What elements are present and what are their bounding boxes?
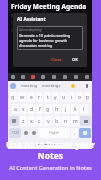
button[interactable]: j	[62, 104, 70, 114]
staticText: y	[54, 94, 57, 101]
staticText: j	[65, 106, 67, 113]
staticText: i	[71, 94, 73, 101]
button[interactable]: Clipboard	[18, 73, 28, 81]
button[interactable]: o	[76, 92, 83, 102]
staticText: f	[39, 106, 41, 113]
button[interactable]: g	[44, 104, 52, 114]
button[interactable]: Shift	[9, 116, 19, 126]
staticText: d	[30, 106, 34, 113]
button[interactable]: t	[44, 92, 51, 102]
staticText: w	[20, 94, 24, 101]
button[interactable]: s	[20, 104, 27, 114]
staticText: g	[46, 106, 50, 113]
staticText: s	[22, 106, 25, 113]
staticText: ?123	[12, 131, 19, 135]
staticText: x	[30, 118, 33, 125]
staticText: p	[86, 94, 90, 101]
staticText: m	[73, 118, 78, 125]
button[interactable]: y	[52, 92, 59, 102]
button[interactable]: Enter	[79, 128, 91, 138]
button[interactable]: z	[20, 116, 27, 126]
button[interactable]: u	[60, 92, 67, 102]
staticText: INTRODUCTION	[11, 14, 33, 18]
button[interactable]: p	[84, 92, 91, 102]
button[interactable]: OK	[69, 56, 81, 63]
staticText: gr	[11, 27, 15, 32]
button[interactable]: Emoji	[22, 128, 29, 138]
staticText: r	[38, 94, 41, 101]
staticText: English	[49, 131, 60, 135]
button[interactable]: Backspace	[80, 116, 91, 126]
staticText: .	[74, 130, 76, 137]
staticText: l	[83, 106, 85, 113]
staticText: e	[30, 94, 33, 101]
staticText: AI Content Generation in Notes	[9, 164, 92, 171]
staticText: Close	[51, 57, 62, 62]
button[interactable]: Record	[28, 73, 38, 81]
button[interactable]: Mic	[84, 81, 90, 91]
button[interactable]: Assistant	[10, 83, 16, 89]
button[interactable]: Close	[48, 56, 65, 63]
staticText: Pr	[11, 20, 15, 25]
staticText: Generate a 10 points meeting agenda for …	[19, 33, 81, 48]
button[interactable]: meetings	[40, 81, 62, 91]
button[interactable]: c	[36, 116, 43, 126]
button[interactable]: Cut	[59, 73, 70, 81]
staticText: c	[38, 118, 41, 125]
button[interactable]: r	[36, 92, 43, 102]
button[interactable]: Keyboard	[8, 73, 18, 81]
staticText: n	[64, 118, 68, 125]
button[interactable]: Numbers	[9, 128, 21, 138]
button[interactable]: f	[36, 104, 43, 114]
button[interactable]: q	[9, 92, 17, 102]
button[interactable]: Undo	[38, 73, 48, 81]
staticText: meeting	[21, 83, 38, 89]
staticText: q	[11, 94, 15, 101]
button[interactable]: Redo	[48, 73, 59, 81]
button[interactable]: .	[71, 128, 78, 138]
staticText: OK	[72, 57, 78, 62]
staticText: Ask me Anything!	[19, 28, 42, 32]
button[interactable]: h	[53, 104, 61, 114]
button[interactable]: v	[44, 116, 52, 126]
staticText: b	[55, 118, 59, 125]
staticText: k	[74, 106, 77, 113]
button[interactable]: Space	[38, 128, 70, 138]
staticText: a	[14, 106, 17, 113]
button[interactable]: b	[53, 116, 61, 126]
button[interactable]: l	[80, 104, 88, 114]
staticText: Friday Meeting Agenda	[11, 2, 87, 11]
button[interactable]: x	[28, 116, 35, 126]
button[interactable]: n	[62, 116, 70, 126]
button[interactable]: a	[12, 104, 19, 114]
button[interactable]: e	[27, 92, 35, 102]
button[interactable]: Italic	[81, 73, 92, 81]
button[interactable]: Settings	[30, 128, 37, 138]
staticText: u	[62, 94, 66, 101]
staticText: meetings	[42, 83, 61, 89]
staticText: h	[55, 106, 59, 113]
button[interactable]: m	[71, 116, 79, 126]
button[interactable]: w	[18, 92, 26, 102]
button[interactable]: k	[71, 104, 79, 114]
staticText: z	[22, 118, 25, 125]
button[interactable]: Copy	[70, 73, 81, 81]
button[interactable]: i	[68, 92, 75, 102]
button[interactable]: Emoji suggestion	[62, 81, 84, 91]
staticText: v	[47, 118, 50, 125]
button[interactable]: d	[28, 104, 35, 114]
staticText: t	[47, 94, 49, 101]
button[interactable]: meeting	[19, 81, 40, 91]
staticText: AI Assistant	[17, 16, 46, 23]
staticText: Use AI to Power your Notes	[0, 139, 101, 161]
staticText: o	[78, 94, 82, 101]
